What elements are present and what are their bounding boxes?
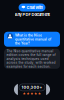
staticText: Any PDF Document bbox=[14, 12, 49, 17]
staticText: What is the Niso quantitative manual of … bbox=[15, 33, 51, 45]
button[interactable]: Chat with bbox=[19, 3, 45, 11]
staticText: 100,300+ bbox=[21, 85, 42, 90]
staticText: Chat with bbox=[26, 5, 42, 10]
staticText: The Niso quantitative manual edition cov… bbox=[6, 49, 55, 68]
